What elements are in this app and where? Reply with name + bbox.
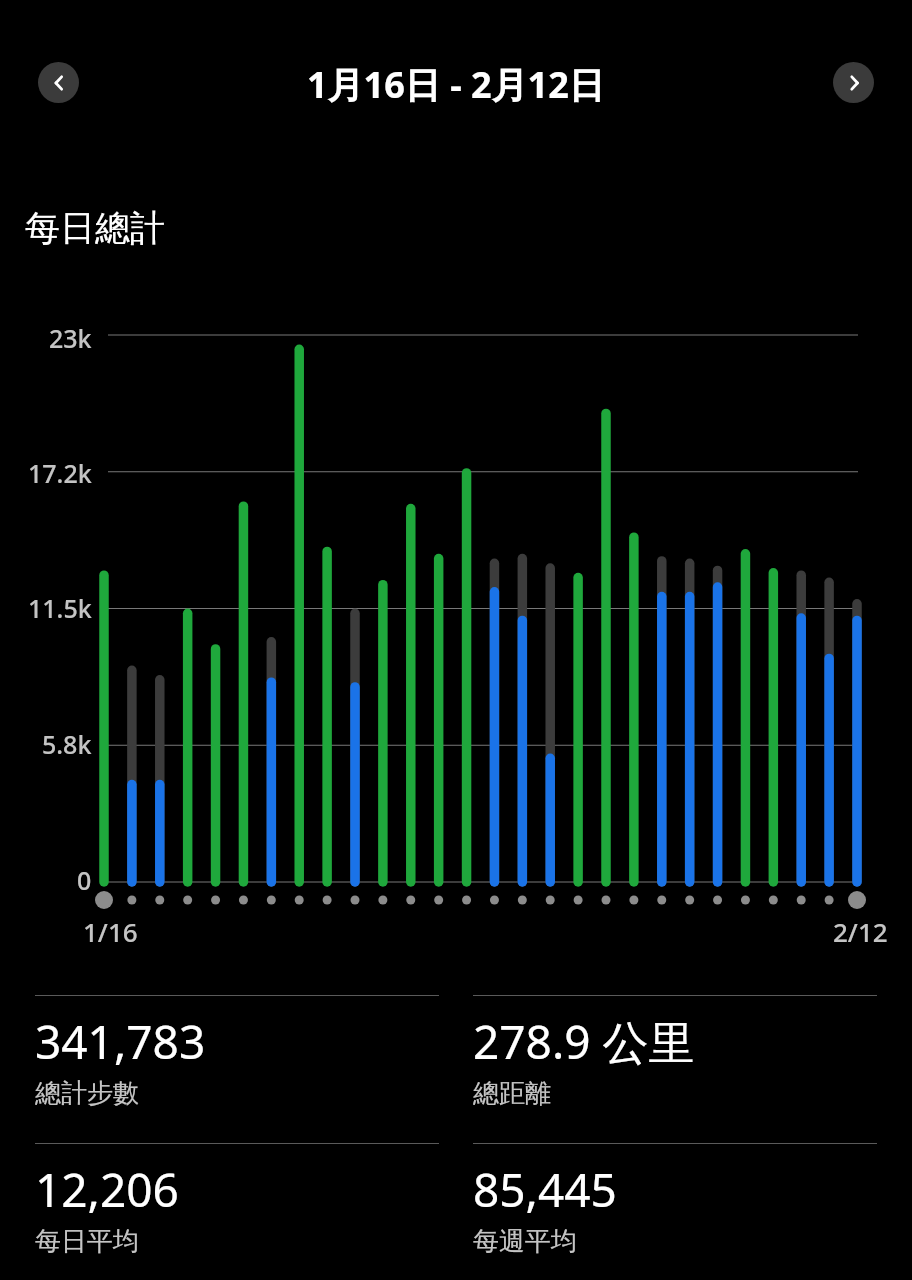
staticText: 341,783 (35, 1010, 206, 1073)
button[interactable]: 341,783 (35, 995, 439, 1110)
staticText: 85,445 (473, 1158, 617, 1221)
staticText: 2/12 (833, 914, 888, 949)
button[interactable]: 12,206 (35, 1143, 439, 1258)
staticText: 11.5k (28, 591, 92, 625)
staticText: 每日平均 (35, 1225, 139, 1258)
button[interactable]: Previous period (38, 62, 79, 103)
staticText: 總距離 (473, 1077, 551, 1110)
staticText: 0 (77, 863, 92, 897)
staticText: 1月16日 - 2月12日 (307, 60, 605, 109)
staticText: 每週平均 (473, 1225, 577, 1258)
staticText: 23k (49, 321, 92, 355)
button[interactable]: Next period (833, 62, 874, 103)
staticText: 1/16 (83, 914, 138, 949)
button[interactable]: 278.9 公里 (473, 995, 877, 1110)
staticText: 每日總計 (25, 206, 165, 250)
staticText: 12,206 (35, 1158, 179, 1221)
staticText: 總計步數 (35, 1077, 139, 1110)
staticText: 17.2k (28, 456, 92, 490)
staticText: 278.9 公里 (473, 1010, 695, 1073)
staticText: 5.8k (42, 727, 92, 761)
button[interactable]: 85,445 (473, 1143, 877, 1258)
